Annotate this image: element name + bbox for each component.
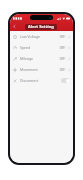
staticText: Alert Setting xyxy=(28,24,54,30)
staticText: Mileage xyxy=(20,56,34,61)
button[interactable]: Toggle Disconnect xyxy=(61,78,70,83)
staticText: OFF xyxy=(60,68,65,71)
staticText: Disconnect xyxy=(20,78,39,83)
button[interactable]: Low Voltage xyxy=(10,31,73,42)
button[interactable]: Mileage xyxy=(10,53,73,64)
staticText: Speed xyxy=(20,45,31,50)
staticText: Movement xyxy=(20,67,38,72)
button[interactable]: Speed xyxy=(10,42,73,53)
button[interactable]: Back xyxy=(10,22,19,31)
staticText: OFF xyxy=(60,35,65,38)
staticText: OFF xyxy=(60,46,65,49)
staticText: OFF xyxy=(60,57,65,60)
button[interactable]: Movement xyxy=(10,64,73,75)
staticText: Low Voltage xyxy=(20,34,40,39)
button[interactable]: Disconnect xyxy=(10,75,73,86)
